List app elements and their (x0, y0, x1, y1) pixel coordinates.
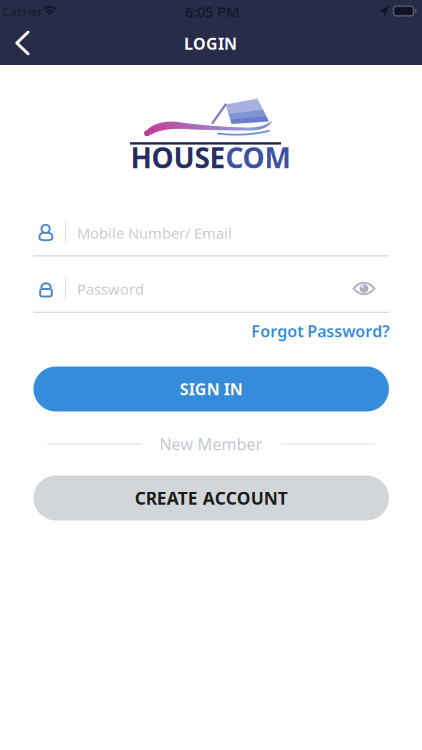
staticText: Mobile Number/ Email (77, 223, 232, 243)
staticText: Password (77, 279, 144, 299)
staticText: Carrier (2, 3, 42, 19)
staticText: HOUSE (130, 139, 225, 176)
staticText: Forgot Password? (251, 320, 389, 342)
staticText: COM (225, 139, 290, 176)
staticText: New Member (159, 433, 262, 455)
button[interactable] (349, 273, 379, 303)
staticText: SIGN IN (180, 378, 243, 400)
button[interactable] (0, 21, 44, 65)
staticText: 6:05 PM (185, 2, 240, 21)
staticText: CREATE ACCOUNT (135, 486, 288, 509)
button[interactable]: Forgot Password? (33, 318, 389, 344)
staticText: LOGIN (184, 33, 237, 54)
button[interactable]: SIGN IN (33, 366, 389, 411)
button[interactable]: CREATE ACCOUNT (33, 475, 389, 520)
